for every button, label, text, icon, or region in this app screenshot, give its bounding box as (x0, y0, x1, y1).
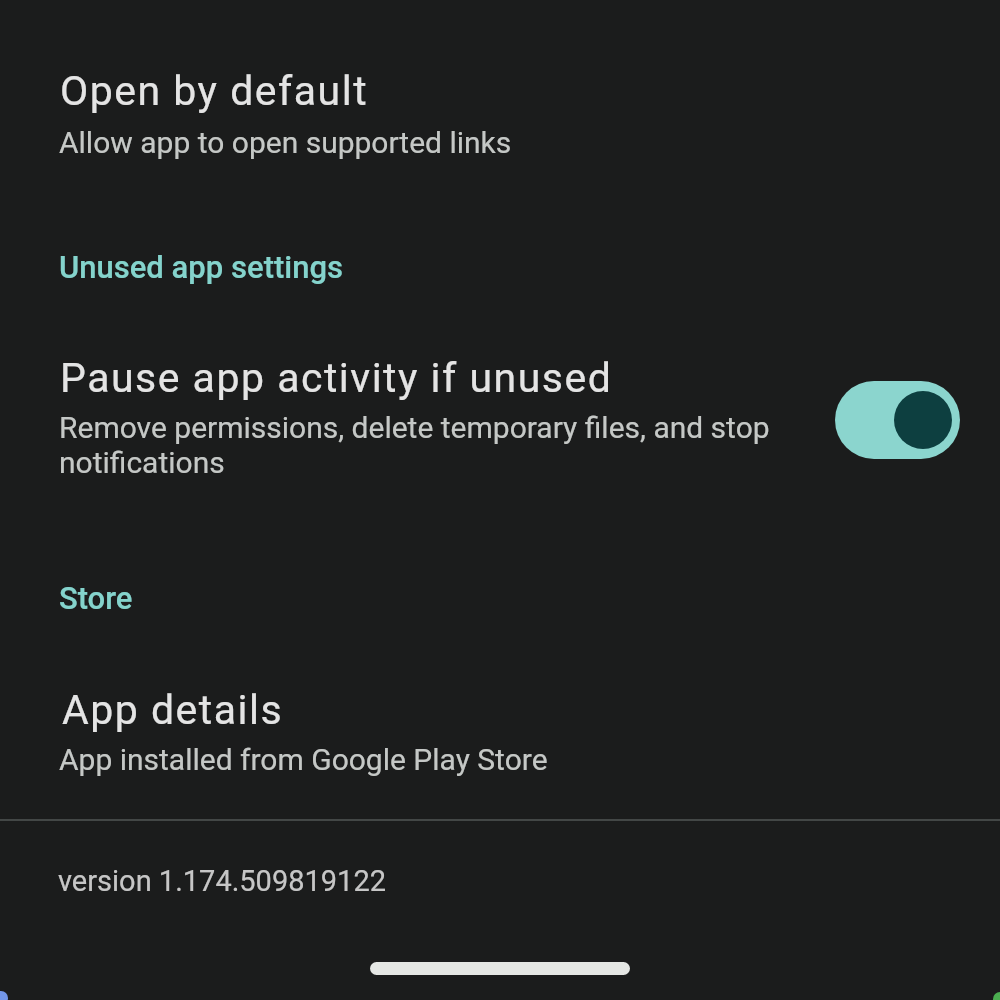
button[interactable]: Pause app activity if unused (0, 345, 1000, 505)
staticText: version 1.174.509819122 (58, 864, 387, 898)
button[interactable]: version 1.174.509819122 (0, 835, 1000, 930)
staticText: Store (59, 580, 133, 616)
staticText: Open by default (60, 67, 369, 115)
button[interactable] (835, 381, 960, 459)
button[interactable]: App details (0, 665, 1000, 800)
staticText: Remove permissions, delete temporary fil… (59, 410, 804, 480)
staticText: Pause app activity if unused (60, 354, 613, 402)
staticText: Allow app to open supported links (59, 125, 512, 160)
staticText: App details (62, 686, 284, 734)
staticText: App installed from Google Play Store (59, 742, 548, 777)
button[interactable]: Open by default (0, 40, 1000, 180)
staticText: Unused app settings (59, 249, 344, 285)
